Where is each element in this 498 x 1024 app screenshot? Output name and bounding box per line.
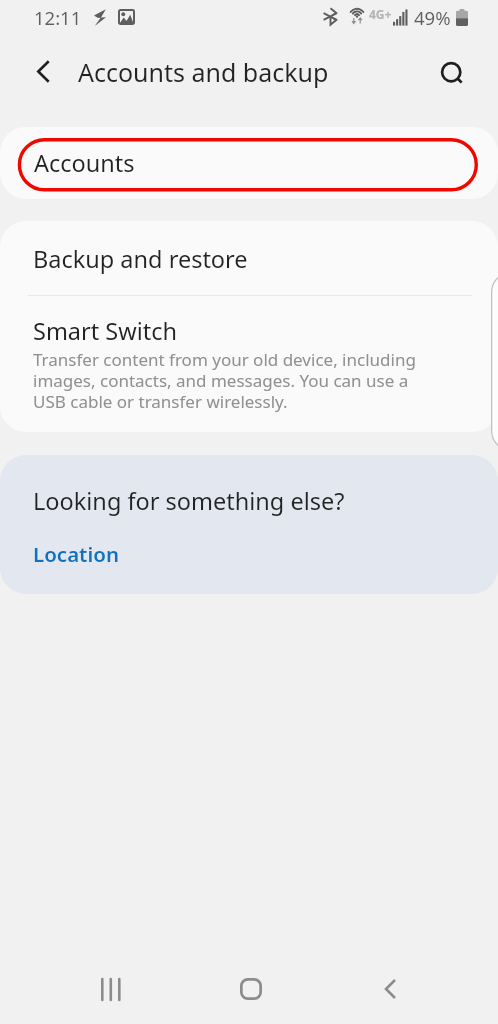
staticText: Smart Switch bbox=[33, 315, 178, 347]
staticText: 12:11 bbox=[34, 5, 82, 30]
button[interactable]: Search bbox=[428, 49, 474, 95]
button[interactable]: Smart Switch bbox=[0, 295, 498, 413]
button[interactable]: Accounts bbox=[0, 127, 498, 199]
staticText: Transfer content from your old device, i… bbox=[33, 348, 426, 413]
button[interactable]: Recent apps bbox=[81, 959, 141, 1019]
staticText: Looking for something else? bbox=[33, 485, 345, 517]
button[interactable]: Backup and restore bbox=[0, 221, 498, 294]
staticText: Accounts and backup bbox=[78, 55, 329, 89]
button[interactable]: Home bbox=[221, 959, 281, 1019]
staticText: Accounts bbox=[34, 147, 135, 179]
staticText: 49% bbox=[414, 5, 451, 30]
button[interactable]: Back bbox=[360, 959, 420, 1019]
staticText: Backup and restore bbox=[33, 243, 248, 275]
button[interactable]: Location bbox=[33, 540, 119, 568]
staticText: Location bbox=[33, 540, 119, 568]
button[interactable]: Navigate up bbox=[20, 49, 66, 95]
staticText: 4G+ bbox=[369, 6, 392, 22]
